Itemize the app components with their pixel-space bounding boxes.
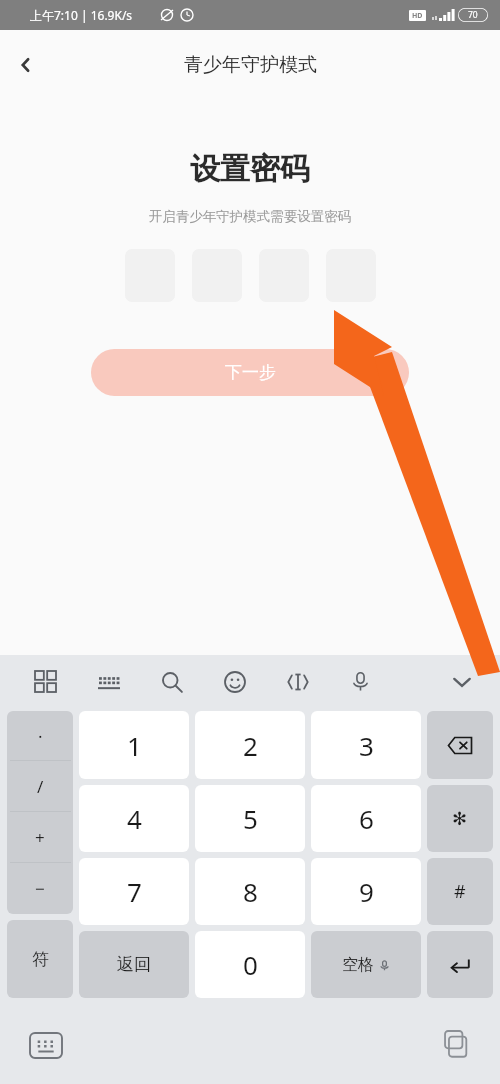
button[interactable]: 切换键盘	[22, 1021, 70, 1069]
staticText: 下一步	[225, 362, 276, 383]
staticText: 8	[243, 874, 258, 909]
button[interactable]: 2	[195, 711, 305, 779]
staticText: 上午7:10 | 16.9K/s	[30, 7, 133, 23]
button[interactable]: 符	[7, 920, 73, 998]
button[interactable]: 8	[195, 858, 305, 925]
button[interactable]: 搜索	[140, 655, 203, 708]
staticText: ·	[38, 725, 43, 748]
staticText: +	[35, 826, 45, 849]
staticText: 0	[243, 947, 258, 982]
staticText: HD	[412, 11, 423, 21]
button[interactable]: 收起键盘	[440, 660, 484, 704]
button[interactable]: 回车	[427, 931, 493, 998]
staticText: 9	[359, 874, 374, 909]
button[interactable]: ·	[7, 711, 73, 761]
button[interactable]: 返回	[79, 931, 189, 998]
button[interactable]: 下一步	[91, 349, 409, 396]
button[interactable]: 最近任务	[430, 1021, 478, 1069]
staticText: 设置密码	[0, 150, 500, 188]
staticText: 6	[359, 801, 374, 836]
staticText: 4	[127, 801, 142, 836]
button[interactable]: 1	[79, 711, 189, 779]
staticText: #	[454, 879, 466, 904]
button[interactable]: 工具	[14, 655, 77, 708]
button[interactable]: /	[7, 761, 73, 812]
staticText: 70	[468, 9, 478, 21]
button[interactable]: 光标	[266, 655, 329, 708]
button[interactable]: 5	[195, 785, 305, 852]
button[interactable]: 表情	[203, 655, 266, 708]
staticText: ✻	[452, 808, 468, 829]
staticText: /	[37, 775, 44, 798]
button[interactable]: 键盘	[77, 655, 140, 708]
staticText: 7	[127, 874, 142, 909]
staticText: 2	[243, 728, 258, 763]
button[interactable]: 空格	[311, 931, 421, 998]
staticText: 3	[359, 728, 374, 763]
staticText: 返回	[117, 954, 151, 975]
button[interactable]: −	[7, 863, 73, 914]
button[interactable]: 4	[79, 785, 189, 852]
button[interactable]: 返回	[0, 39, 52, 91]
staticText: 空格	[342, 955, 374, 975]
button[interactable]: 语音	[329, 655, 392, 708]
staticText: 5	[243, 801, 258, 836]
button[interactable]: #	[427, 858, 493, 925]
button[interactable]: 7	[79, 858, 189, 925]
staticText: 1	[127, 728, 142, 763]
button[interactable]: 删除	[427, 711, 493, 779]
button[interactable]: 3	[311, 711, 421, 779]
staticText: 符	[32, 949, 49, 970]
staticText: 开启青少年守护模式需要设置密码	[0, 208, 500, 225]
button[interactable]: 0	[195, 931, 305, 998]
staticText: −	[35, 877, 45, 900]
button[interactable]: 6	[311, 785, 421, 852]
button[interactable]: ✻	[427, 785, 493, 852]
staticText: 青少年守护模式	[184, 53, 317, 77]
button[interactable]: +	[7, 812, 73, 863]
button[interactable]: 9	[311, 858, 421, 925]
